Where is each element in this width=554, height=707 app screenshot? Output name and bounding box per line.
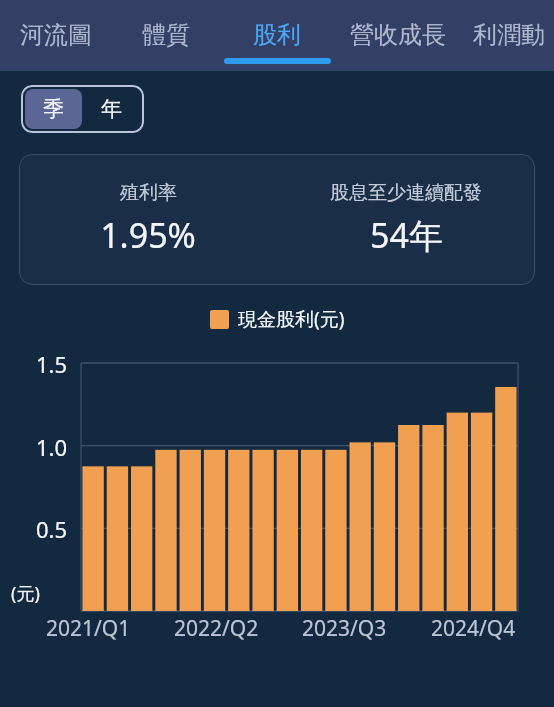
staticText: 股息至少連續配發 — [330, 181, 482, 205]
staticText: 殖利率 — [120, 181, 177, 205]
button[interactable]: 利潤動 — [463, 0, 554, 71]
staticText: 體質 — [142, 20, 190, 50]
staticText: 54年 — [370, 212, 443, 258]
staticText: 股利 — [253, 20, 301, 50]
button[interactable]: 河流圖 — [0, 0, 111, 71]
staticText: 營收成長 — [350, 20, 446, 50]
staticText: 2021/Q1 — [46, 614, 131, 643]
staticText: 1.5 — [36, 349, 68, 379]
button[interactable]: 股利 — [221, 0, 333, 71]
staticText: (元) — [11, 581, 40, 606]
button[interactable]: 年 — [82, 89, 140, 129]
button[interactable]: 季 — [25, 89, 82, 129]
staticText: 2022/Q2 — [174, 614, 259, 643]
button[interactable]: 營收成長 — [333, 0, 463, 71]
staticText: 現金股利(元) — [238, 306, 345, 332]
staticText: 1.0 — [36, 432, 68, 462]
staticText: 利潤動 — [473, 20, 545, 50]
button[interactable]: 殖利率 — [19, 154, 535, 285]
staticText: 1.95% — [100, 212, 196, 258]
button[interactable]: 體質 — [111, 0, 221, 71]
staticText: 河流圖 — [20, 20, 92, 50]
staticText: 0.5 — [36, 514, 68, 544]
staticText: 年 — [101, 96, 122, 122]
staticText: 季 — [43, 96, 64, 122]
staticText: 2024/Q4 — [431, 614, 516, 643]
other: Cash dividend legend — [210, 310, 229, 329]
staticText: 2023/Q3 — [302, 614, 387, 643]
